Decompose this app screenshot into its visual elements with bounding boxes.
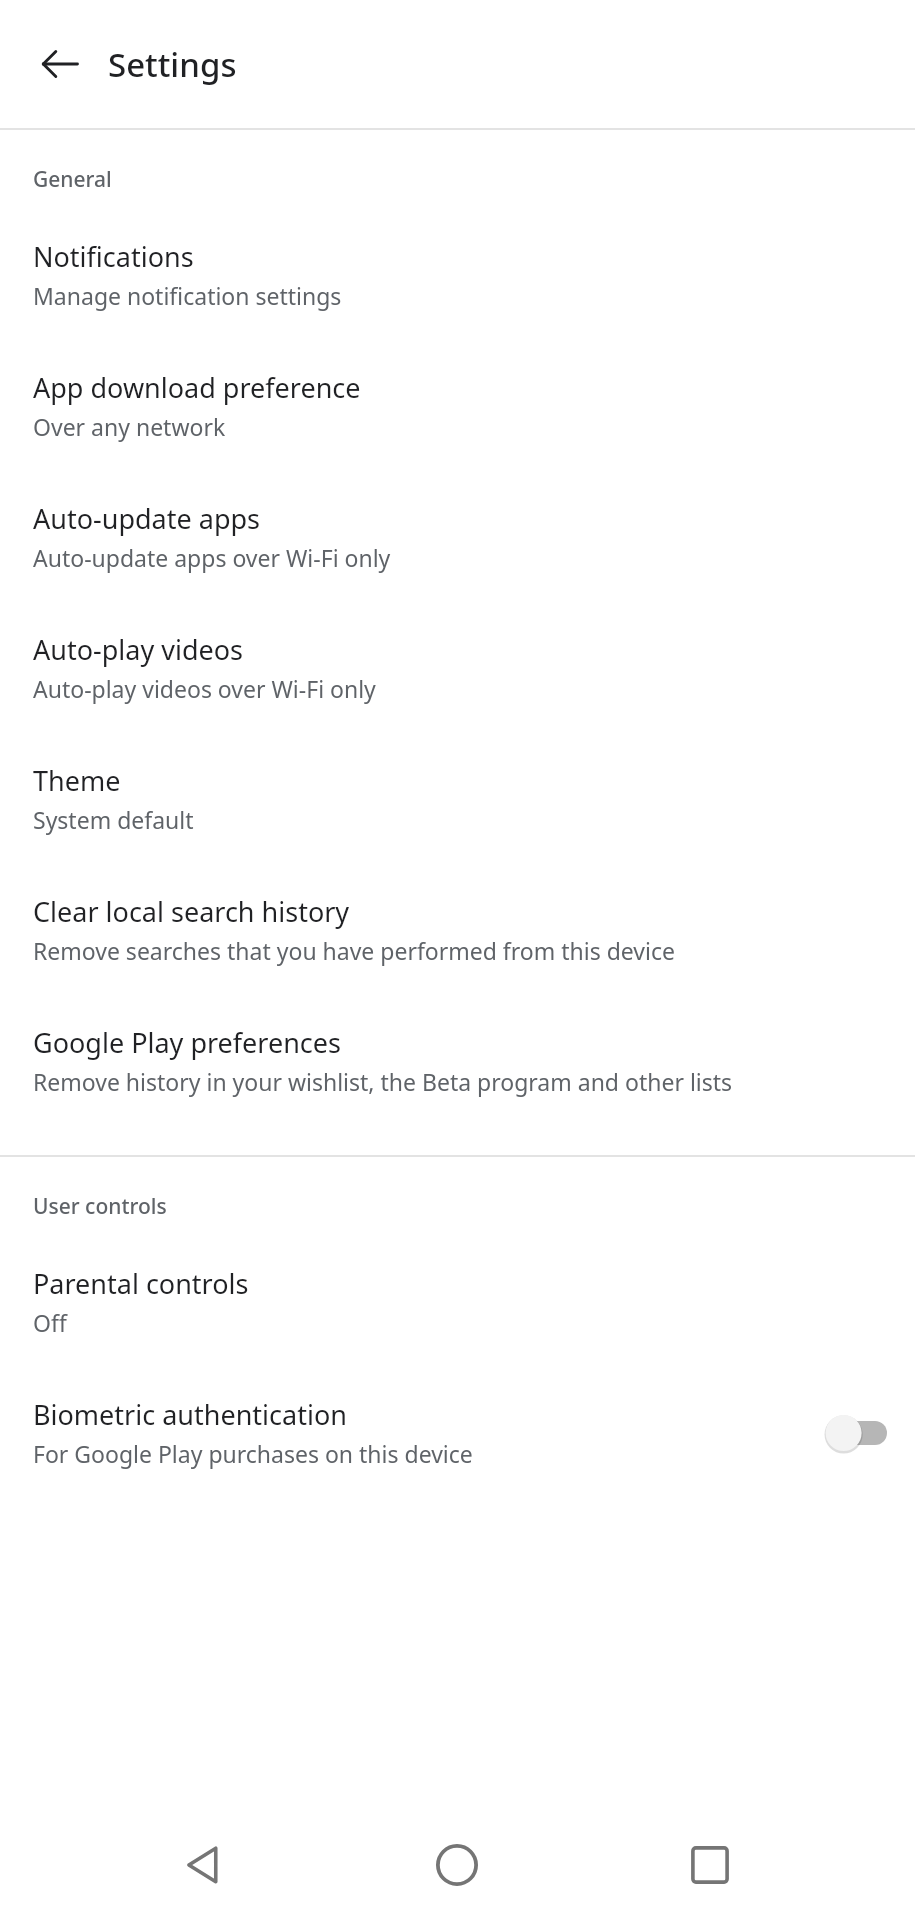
button[interactable]: Auto-play videos — [0, 593, 915, 724]
button[interactable]: Clear local search history — [0, 855, 915, 986]
staticText: Auto-play videos — [33, 631, 244, 668]
button[interactable]: Parental controls — [0, 1237, 915, 1358]
staticText: Auto-update apps — [33, 500, 261, 537]
staticText: Google Play preferences — [33, 1024, 341, 1061]
staticText: App download preference — [33, 369, 361, 406]
button[interactable]: Recent apps — [662, 1817, 758, 1913]
button[interactable]: Notifications — [0, 210, 915, 331]
staticText: Remove history in your wishlist, the Bet… — [33, 1066, 733, 1097]
button[interactable]: Google Play preferences — [0, 986, 915, 1155]
button[interactable]: App download preference — [0, 331, 915, 462]
button[interactable]: Biometric authentication — [0, 1358, 915, 1489]
staticText: Manage notification settings — [33, 280, 342, 311]
staticText: Settings — [108, 42, 237, 87]
button[interactable]: Biometric authentication toggle, off — [815, 1409, 891, 1457]
staticText: For Google Play purchases on this device — [33, 1438, 473, 1469]
staticText: Parental controls — [33, 1265, 249, 1302]
staticText: Remove searches that you have performed … — [33, 935, 675, 966]
staticText: Notifications — [33, 238, 194, 275]
staticText: User controls — [33, 1192, 167, 1221]
button[interactable]: Auto-update apps — [0, 462, 915, 593]
staticText: Clear local search history — [33, 893, 350, 930]
staticText: Auto-play videos over Wi-Fi only — [33, 673, 376, 704]
staticText: Biometric authentication — [33, 1396, 347, 1433]
staticText: Off — [33, 1307, 67, 1338]
button[interactable]: Back — [12, 16, 108, 112]
staticText: Over any network — [33, 411, 226, 442]
button[interactable]: Home — [409, 1817, 505, 1913]
staticText: General — [33, 165, 112, 194]
staticText: Theme — [33, 762, 121, 799]
staticText: Auto-update apps over Wi-Fi only — [33, 542, 391, 573]
button[interactable]: Theme — [0, 724, 915, 855]
button[interactable]: Back — [156, 1817, 252, 1913]
staticText: System default — [33, 804, 194, 835]
